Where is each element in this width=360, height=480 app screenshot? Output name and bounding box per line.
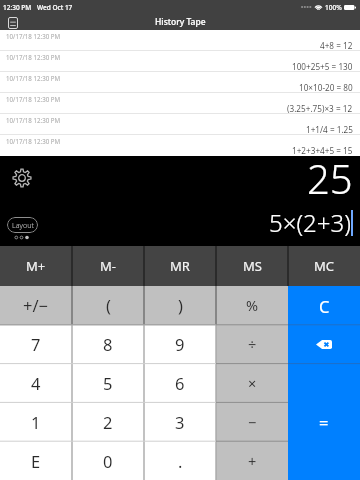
staticText: 10/17/18 12:30 PM — [6, 95, 61, 103]
staticText: 10/17/18 12:30 PM — [6, 74, 61, 82]
staticText: 9 — [175, 333, 185, 355]
button[interactable]: +/− — [0, 286, 72, 324]
staticText: Layout — [12, 220, 34, 230]
button[interactable]: 4 — [0, 363, 72, 402]
button[interactable]: M+ — [0, 246, 72, 286]
staticText: ) — [178, 294, 183, 316]
button[interactable]: 10/17/18 12:30 PM — [0, 135, 360, 156]
button[interactable]: ( — [72, 286, 144, 324]
staticText: 5×(2+3) — [269, 206, 351, 239]
button[interactable]: 2 — [72, 402, 144, 441]
staticText: 10/17/18 12:30 PM — [6, 116, 61, 124]
staticText: 2 — [103, 411, 113, 433]
staticText: 10/17/18 12:30 PM — [6, 53, 61, 61]
button[interactable]: 10/17/18 12:30 PM — [0, 51, 360, 72]
button[interactable]: = — [288, 364, 360, 480]
staticText: 5 — [103, 372, 113, 394]
button[interactable]: C — [288, 286, 360, 325]
staticText: M- — [100, 257, 116, 275]
staticText: 100+25+5 = 130 — [292, 61, 353, 72]
button[interactable]: 10/17/18 12:30 PM — [0, 30, 360, 51]
button[interactable]: Backspace — [288, 325, 360, 364]
staticText: E — [31, 450, 41, 472]
staticText: 0 — [103, 450, 113, 472]
staticText: 100% — [325, 3, 342, 12]
button[interactable]: MR — [144, 246, 216, 286]
staticText: MR — [170, 257, 190, 275]
button[interactable]: + — [216, 441, 288, 480]
button[interactable]: History tape — [5, 15, 20, 30]
staticText: 10×10-20 = 80 — [299, 82, 353, 93]
staticText: ÷ — [248, 334, 257, 354]
button[interactable]: 9 — [144, 324, 216, 363]
button[interactable]: 8 — [72, 324, 144, 363]
staticText: 12:30 PM — [3, 3, 32, 12]
button[interactable]: 10/17/18 12:30 PM — [0, 93, 360, 114]
staticText: Wed Oct 17 — [37, 3, 73, 12]
button[interactable]: 6 — [144, 363, 216, 402]
staticText: 6 — [175, 372, 185, 394]
button[interactable]: M- — [72, 246, 144, 286]
staticText: 4+8 = 12 — [320, 40, 353, 51]
button[interactable]: % — [216, 286, 288, 324]
staticText: % — [246, 295, 259, 315]
staticText: MC — [314, 257, 335, 275]
staticText: 3 — [175, 411, 185, 433]
staticText: C — [319, 295, 330, 317]
button[interactable]: 7 — [0, 324, 72, 363]
button[interactable]: − — [216, 402, 288, 441]
staticText: . — [178, 450, 183, 472]
staticText: 4 — [31, 372, 41, 394]
button[interactable]: 5 — [72, 363, 144, 402]
button[interactable]: 0 — [72, 441, 144, 480]
button[interactable]: 10/17/18 12:30 PM — [0, 114, 360, 135]
button[interactable]: Settings — [12, 168, 32, 188]
staticText: History Tape — [155, 16, 206, 28]
button[interactable]: 1 — [0, 402, 72, 441]
button[interactable]: MS — [216, 246, 288, 286]
button[interactable]: Layout — [7, 217, 38, 233]
staticText: 7 — [31, 333, 41, 355]
staticText: ( — [106, 294, 111, 316]
staticText: 1+1/4 = 1.25 — [306, 124, 353, 135]
button[interactable]: MC — [288, 246, 360, 286]
staticText: +/− — [23, 294, 49, 316]
staticText: 10/17/18 12:30 PM — [6, 137, 61, 145]
staticText: 8 — [103, 333, 113, 355]
button[interactable]: E — [0, 441, 72, 480]
button[interactable]: ÷ — [216, 324, 288, 363]
button[interactable]: 3 — [144, 402, 216, 441]
staticText: = — [319, 411, 329, 433]
button[interactable]: × — [216, 363, 288, 402]
button[interactable]: 10/17/18 12:30 PM — [0, 72, 360, 93]
staticText: 10/17/18 12:30 PM — [6, 32, 61, 40]
staticText: 1 — [31, 411, 41, 433]
staticText: 25 — [307, 151, 353, 205]
staticText: M+ — [26, 257, 46, 275]
staticText: (3.25+.75)×3 = 12 — [287, 103, 353, 114]
button[interactable]: ) — [144, 286, 216, 324]
staticText: 1+2+3+4+5 = 15 — [292, 145, 353, 156]
button[interactable]: . — [144, 441, 216, 480]
staticText: − — [248, 412, 257, 432]
staticText: MS — [243, 257, 262, 275]
staticText: × — [248, 373, 257, 393]
staticText: + — [248, 451, 257, 471]
